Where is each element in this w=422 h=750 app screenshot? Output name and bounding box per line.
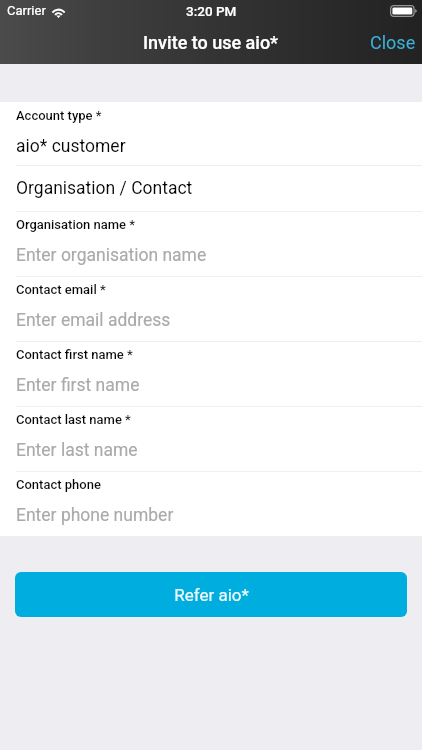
staticText: Organisation name *: [16, 217, 136, 232]
staticText: Close: [370, 32, 416, 53]
button[interactable]: Contact last name *: [0, 407, 422, 471]
staticText: Contact phone: [16, 477, 101, 492]
staticText: Invite to use aio*: [143, 32, 279, 53]
button[interactable]: Contact phone: [0, 472, 422, 536]
button[interactable]: Close: [362, 22, 422, 63]
staticText: Enter phone number: [16, 505, 174, 526]
staticText: Contact first name *: [16, 347, 133, 362]
staticText: Account type *: [16, 108, 102, 123]
button[interactable]: Refer aio*: [15, 572, 407, 617]
staticText: Contact last name *: [16, 412, 131, 427]
button[interactable]: Account type *: [0, 102, 422, 165]
staticText: 3:20 PM: [186, 3, 237, 19]
staticText: Organisation / Contact: [16, 178, 193, 199]
other: Battery: [390, 5, 417, 17]
button[interactable]: Contact first name *: [0, 342, 422, 406]
staticText: Carrier: [7, 3, 46, 18]
staticText: Refer aio*: [174, 585, 249, 605]
staticText: Enter first name: [16, 375, 140, 396]
button[interactable]: Contact email *: [0, 277, 422, 341]
staticText: Enter organisation name: [16, 245, 207, 266]
button[interactable]: Organisation name *: [0, 212, 422, 276]
staticText: Enter email address: [16, 310, 171, 331]
staticText: aio* customer: [16, 136, 126, 157]
staticText: Contact email *: [16, 282, 106, 297]
staticText: Enter last name: [16, 440, 138, 461]
other: Wi-Fi: [50, 5, 67, 17]
